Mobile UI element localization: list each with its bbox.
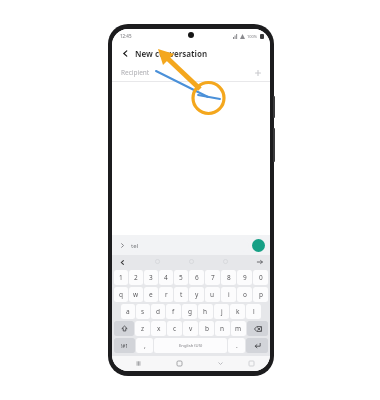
staticText: 0 [259, 273, 263, 282]
staticText: l [253, 307, 255, 316]
button[interactable]: 9 [237, 270, 252, 285]
button[interactable]: 1 [114, 270, 128, 285]
staticText: y [195, 290, 199, 299]
staticText: English (US) [179, 343, 203, 349]
button[interactable]: Add recipient [253, 68, 262, 77]
button[interactable]: Symbols [114, 338, 135, 353]
staticText: g [188, 307, 192, 316]
button[interactable]: g [182, 304, 197, 319]
staticText: b [205, 324, 209, 333]
staticText: s [141, 307, 145, 316]
button[interactable]: a [121, 304, 135, 319]
staticText: , [144, 341, 146, 350]
button[interactable]: s [136, 304, 150, 319]
button[interactable]: o [237, 287, 252, 302]
button[interactable]: t [174, 287, 188, 302]
staticText: q [119, 290, 123, 299]
button[interactable]: 3 [144, 270, 158, 285]
staticText: 100% [247, 34, 258, 39]
staticText: f [172, 307, 175, 316]
staticText: d [156, 307, 160, 316]
button[interactable]: Keyboard tool [221, 257, 230, 266]
button[interactable]: 5 [174, 270, 188, 285]
button[interactable]: p [253, 287, 268, 302]
button[interactable]: x [151, 321, 166, 336]
staticText: 12:45 [120, 33, 132, 39]
button[interactable]: Expand toolbar [255, 257, 265, 267]
button[interactable]: tel [131, 239, 249, 252]
staticText: r [165, 290, 168, 299]
staticText: 6 [195, 273, 199, 282]
button[interactable]: q [114, 287, 128, 302]
staticText: Recipient [121, 68, 150, 77]
staticText: u [210, 290, 215, 299]
button[interactable]: Keyboard tool [187, 257, 196, 266]
button[interactable]: English (US) [154, 338, 227, 353]
staticText: e [149, 290, 153, 299]
staticText: . [236, 341, 238, 350]
button[interactable]: 4 [159, 270, 173, 285]
staticText: v [189, 324, 193, 333]
staticText: k [236, 307, 240, 316]
staticText: t [180, 290, 183, 299]
button[interactable]: r [159, 287, 173, 302]
button[interactable]: Recents [133, 358, 144, 369]
button[interactable]: c [167, 321, 182, 336]
button[interactable]: Keyboard layout [246, 358, 257, 369]
button[interactable]: Recipient [112, 64, 270, 81]
button[interactable]: More options [117, 257, 127, 267]
button[interactable]: e [144, 287, 158, 302]
button[interactable]: m [231, 321, 246, 336]
staticText: m [235, 324, 242, 333]
button[interactable]: i [221, 287, 236, 302]
staticText: i [228, 290, 230, 299]
button[interactable]: . [228, 338, 245, 353]
button[interactable]: 7 [205, 270, 220, 285]
staticText: w [133, 290, 139, 299]
button[interactable]: y [189, 287, 204, 302]
button[interactable]: Home [174, 358, 185, 369]
staticText: n [220, 324, 225, 333]
staticText: j [221, 307, 223, 316]
button[interactable]: k [230, 304, 245, 319]
button[interactable]: , [136, 338, 153, 353]
staticText: New conversation [135, 48, 208, 59]
button[interactable]: 6 [189, 270, 204, 285]
button[interactable]: j [214, 304, 229, 319]
staticText: 7 [211, 273, 215, 282]
button[interactable]: z [135, 321, 150, 336]
staticText: 4 [164, 273, 168, 282]
staticText: !#1 [121, 343, 128, 349]
button[interactable]: 8 [221, 270, 236, 285]
staticText: z [141, 324, 145, 333]
button[interactable]: Shift [114, 321, 134, 336]
staticText: 1 [119, 273, 123, 282]
staticText: 2 [134, 273, 138, 282]
button[interactable]: Keyboard tool [153, 257, 162, 266]
button[interactable]: Expand [117, 240, 127, 250]
button[interactable]: b [199, 321, 214, 336]
button[interactable]: Hide keyboard [215, 358, 226, 369]
staticText: tel [131, 242, 139, 250]
staticText: 8 [227, 273, 231, 282]
button[interactable]: d [151, 304, 165, 319]
button[interactable]: 2 [129, 270, 143, 285]
button[interactable]: Enter [246, 338, 268, 353]
button[interactable]: v [183, 321, 198, 336]
button[interactable]: n [215, 321, 230, 336]
button[interactable]: h [198, 304, 213, 319]
staticText: 9 [243, 273, 247, 282]
button[interactable]: Backspace [247, 321, 268, 336]
button[interactable]: f [166, 304, 181, 319]
staticText: p [259, 290, 263, 299]
staticText: h [203, 307, 208, 316]
staticText: 5 [179, 273, 183, 282]
staticText: a [126, 307, 130, 316]
button[interactable]: 0 [253, 270, 268, 285]
button[interactable]: u [205, 287, 220, 302]
button[interactable]: l [246, 304, 261, 319]
staticText: 3 [149, 273, 153, 282]
button[interactable]: Send [252, 239, 265, 252]
button[interactable]: w [129, 287, 143, 302]
button[interactable]: Back [119, 47, 131, 59]
